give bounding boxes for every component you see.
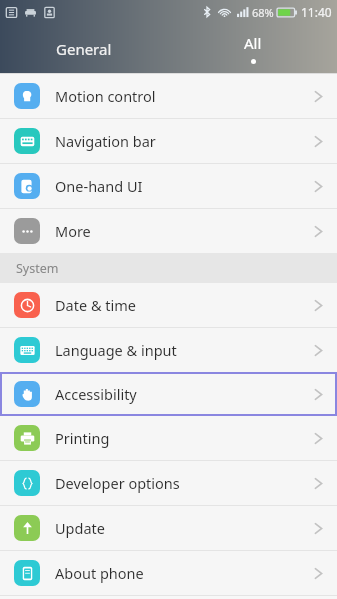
staticText: Date & time [55, 295, 136, 315]
staticText: Navigation bar [55, 131, 156, 151]
staticText: System [16, 260, 59, 277]
staticText: About phone [55, 563, 144, 583]
button[interactable]: Developer options [0, 461, 337, 505]
button[interactable]: General [0, 24, 168, 73]
button[interactable]: Navigation bar [0, 119, 337, 163]
staticText: Motion control [55, 86, 156, 106]
staticText: More [55, 221, 91, 241]
staticText: One-hand UI [55, 176, 143, 196]
button[interactable]: Date & time [0, 283, 337, 327]
staticText: All [244, 33, 262, 53]
staticText: 11:40 [301, 4, 332, 20]
staticText: General [56, 39, 112, 59]
button[interactable]: Printing [0, 416, 337, 460]
button[interactable]: More [0, 209, 337, 253]
staticText: Printing [55, 428, 110, 448]
button[interactable]: Update [0, 506, 337, 550]
staticText: Language & input [55, 340, 177, 360]
staticText: Update [55, 518, 105, 538]
staticText: Developer options [55, 473, 180, 493]
button[interactable]: Language & input [0, 328, 337, 372]
button[interactable]: About phone [0, 551, 337, 595]
button[interactable]: Motion control [0, 74, 337, 118]
staticText: 68% [252, 5, 274, 20]
button[interactable]: One-hand UI [0, 164, 337, 208]
staticText: Accessibility [55, 384, 137, 404]
button[interactable]: All [168, 24, 337, 73]
button[interactable]: Accessibility [0, 372, 337, 416]
